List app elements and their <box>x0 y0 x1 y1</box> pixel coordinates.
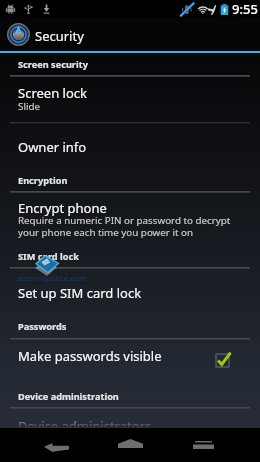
staticText: Set up SIM card lock <box>18 284 142 302</box>
staticText: 9:55 <box>232 0 258 18</box>
button[interactable]: Owner info <box>0 130 260 165</box>
staticText: Passwords <box>18 320 67 333</box>
staticText: Make passwords visible <box>18 347 162 365</box>
staticText: Device administrators <box>18 417 152 435</box>
button[interactable]: Device administrators <box>0 409 260 444</box>
staticText: SIM card lock <box>18 250 79 263</box>
button[interactable]: Home <box>98 428 163 462</box>
staticText: Encryption <box>18 174 68 187</box>
button[interactable]: Make passwords visible <box>0 339 260 374</box>
staticText: Screen security <box>18 58 88 71</box>
staticText: Slide <box>18 100 40 113</box>
staticText: Owner info <box>18 138 87 156</box>
staticText: Require a numeric PIN or password to dec… <box>18 214 231 239</box>
staticText: Device administration <box>18 390 119 403</box>
staticText: Screen lock <box>18 84 87 102</box>
staticText: Encrypt phone <box>18 199 107 217</box>
button[interactable]: Screen lock <box>0 76 260 122</box>
staticText: androidpolice.com <box>17 273 87 283</box>
button[interactable]: Recent apps <box>172 428 237 462</box>
staticText: Security <box>35 27 84 45</box>
button[interactable]: Back <box>24 428 89 462</box>
button[interactable]: Encrypt phone <box>0 191 260 226</box>
button[interactable]: Set up SIM card lock <box>0 276 260 311</box>
